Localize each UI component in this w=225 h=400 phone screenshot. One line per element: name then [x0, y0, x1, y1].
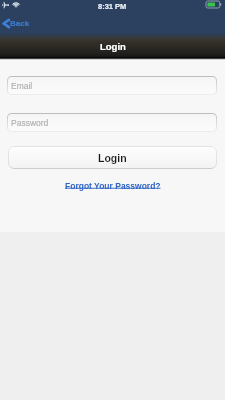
button[interactable]: Forgot Your Password?	[63, 180, 163, 191]
staticText: 8:31 PM	[98, 2, 127, 10]
staticText: Email	[11, 81, 33, 90]
other: Battery	[206, 1, 222, 8]
staticText: Login	[100, 41, 126, 52]
other: Wi-Fi	[12, 1, 20, 8]
button[interactable]: Email	[7, 76, 217, 95]
staticText: Password	[11, 118, 49, 127]
button[interactable]: Password	[7, 113, 217, 132]
button[interactable]: Login	[8, 146, 217, 169]
staticText: Back	[10, 19, 30, 28]
staticText: Login	[98, 152, 127, 164]
other: Airplane mode	[2, 1, 9, 8]
other: Back	[2, 18, 10, 29]
button[interactable]: Back	[2, 18, 30, 29]
